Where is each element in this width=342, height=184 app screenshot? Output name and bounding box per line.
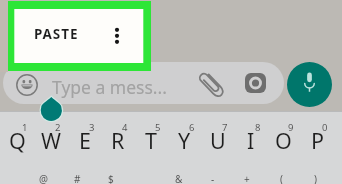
staticText: 0 bbox=[322, 121, 328, 133]
staticText: U bbox=[210, 126, 226, 155]
staticText: W bbox=[41, 126, 61, 155]
button[interactable] bbox=[196, 156, 230, 184]
staticText: 6 bbox=[189, 121, 195, 133]
button[interactable]: Voice message bbox=[287, 62, 332, 107]
button[interactable] bbox=[264, 156, 298, 184]
staticText: Type a mess... bbox=[52, 75, 167, 99]
staticText: 3 bbox=[89, 121, 95, 133]
staticText: 8 bbox=[255, 121, 261, 133]
button[interactable] bbox=[168, 114, 201, 147]
button[interactable] bbox=[94, 156, 128, 184]
staticText: O bbox=[275, 126, 292, 155]
staticText: ( bbox=[280, 172, 283, 184]
button[interactable]: Attach bbox=[197, 71, 227, 99]
staticText: R bbox=[111, 126, 125, 155]
staticText: 7 bbox=[222, 121, 228, 133]
button[interactable] bbox=[1, 114, 34, 147]
button[interactable] bbox=[134, 114, 167, 147]
button[interactable] bbox=[230, 156, 264, 184]
staticText: 1 bbox=[22, 121, 28, 133]
button[interactable] bbox=[60, 156, 94, 184]
button[interactable] bbox=[26, 156, 60, 184]
button[interactable] bbox=[162, 156, 196, 184]
staticText: 9 bbox=[288, 121, 294, 133]
staticText: I bbox=[247, 126, 255, 155]
staticText: 4 bbox=[122, 121, 128, 133]
staticText: E bbox=[79, 126, 91, 155]
staticText: Y bbox=[178, 126, 191, 155]
button[interactable] bbox=[68, 114, 101, 147]
button[interactable] bbox=[301, 114, 334, 147]
staticText: Q bbox=[9, 126, 26, 155]
button[interactable] bbox=[101, 114, 134, 147]
staticText: + bbox=[244, 172, 250, 184]
staticText: 5 bbox=[155, 121, 161, 133]
button[interactable] bbox=[34, 114, 67, 147]
button[interactable]: Camera bbox=[245, 73, 266, 93]
button[interactable] bbox=[298, 156, 332, 184]
staticText: & bbox=[175, 172, 183, 184]
button[interactable]: Emoji bbox=[16, 74, 38, 96]
staticText: @ bbox=[39, 172, 48, 184]
staticText: $ bbox=[108, 172, 114, 184]
staticText: # bbox=[74, 172, 81, 184]
staticText: - bbox=[211, 172, 215, 184]
button[interactable] bbox=[267, 114, 300, 147]
button[interactable]: PASTE bbox=[34, 25, 79, 43]
button[interactable]: More options bbox=[105, 25, 129, 47]
staticText: ) bbox=[314, 172, 317, 184]
button[interactable] bbox=[234, 114, 267, 147]
staticText: T bbox=[145, 126, 157, 155]
button[interactable] bbox=[201, 114, 234, 147]
staticText: 2 bbox=[55, 121, 61, 133]
staticText: P bbox=[311, 126, 325, 155]
